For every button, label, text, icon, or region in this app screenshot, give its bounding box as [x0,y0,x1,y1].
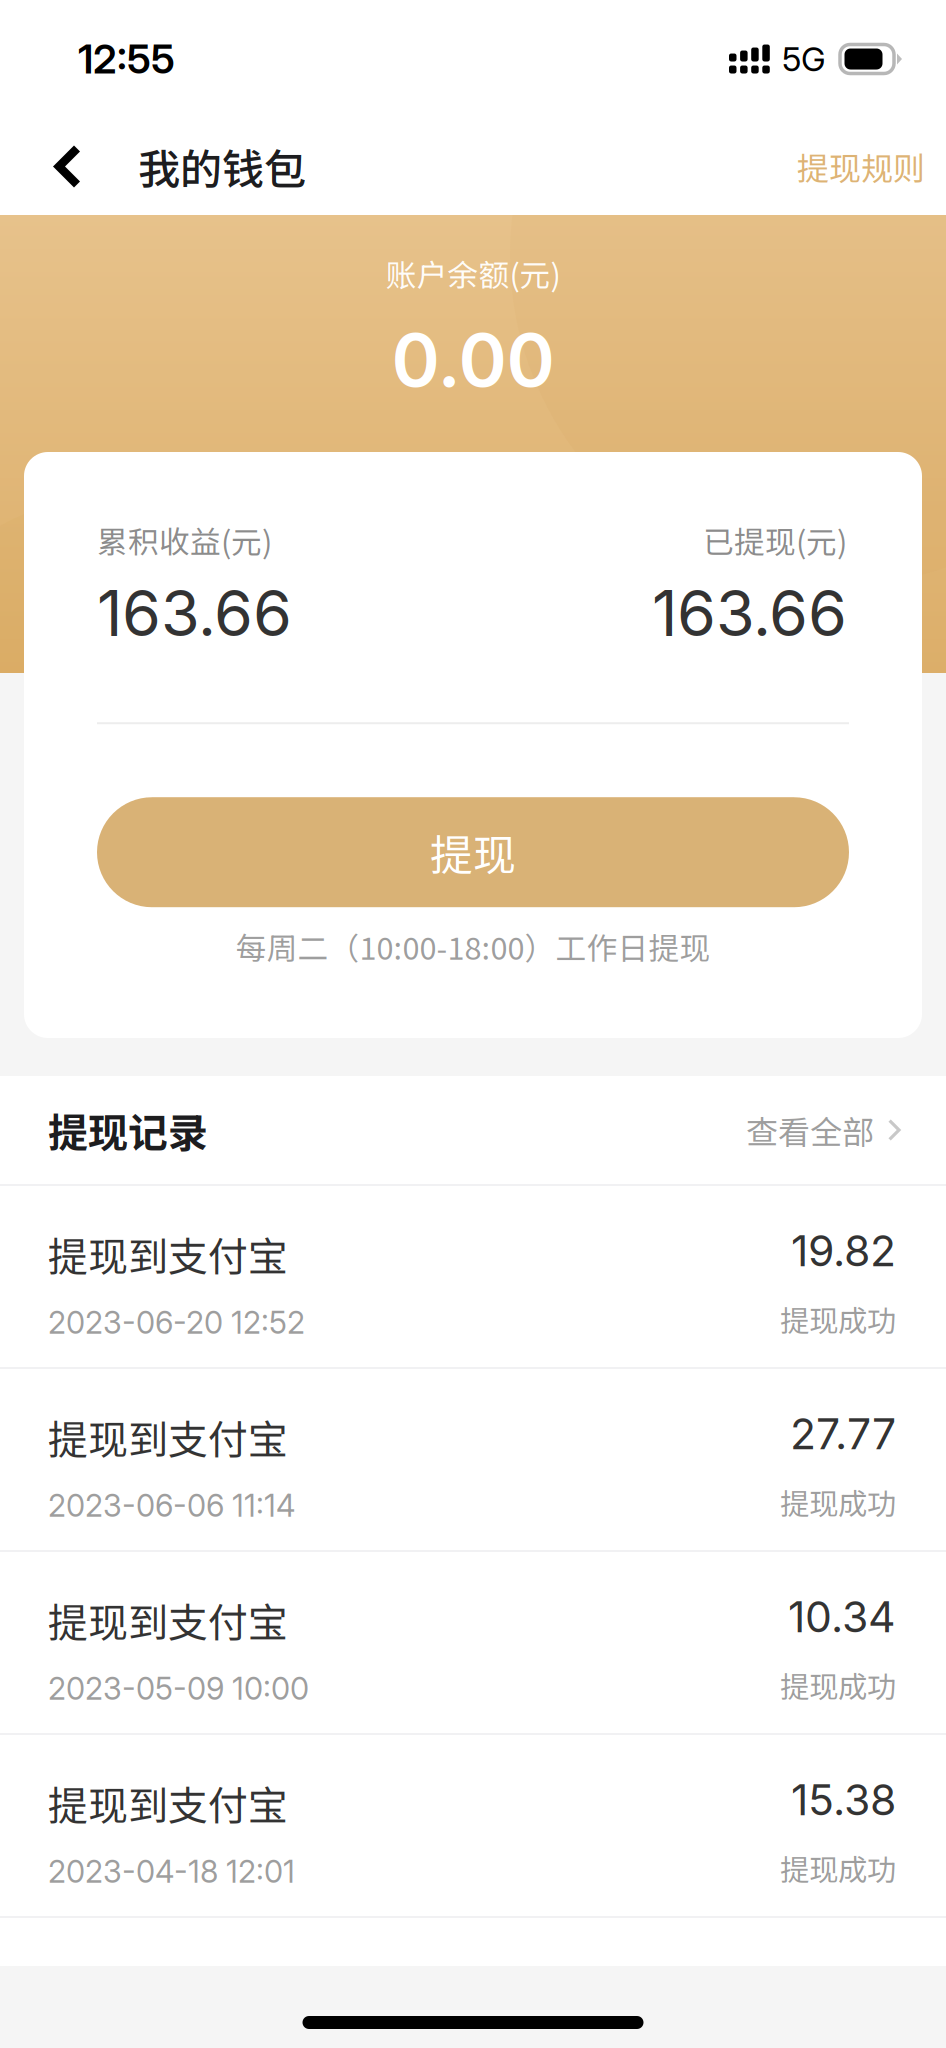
staticText: 0.00 [391,315,554,404]
staticText: 提现到支付宝 [48,1408,288,1466]
button[interactable]: 提现到支付宝 [0,1369,946,1552]
staticText: 提现到支付宝 [48,1225,288,1283]
button[interactable]: 提现规则 [797,121,946,212]
button[interactable]: 提现到支付宝 [0,1735,946,1918]
button[interactable]: 提现到支付宝 [0,1186,946,1369]
staticText: 提现记录 [48,1101,208,1159]
staticText: 提现到支付宝 [48,1774,288,1832]
staticText: 2023-04-18 12:01 [48,1853,295,1890]
staticText: 提现规则 [797,143,925,190]
staticText: 15.38 [791,1774,896,1826]
button[interactable]: 提现 [97,797,849,907]
staticText: 查看全部 [746,1107,874,1153]
staticText: 10.34 [788,1591,896,1643]
staticText: 5G [782,39,826,79]
staticText: 27.77 [790,1408,896,1460]
staticText: 账户余额(元) [385,251,560,295]
staticText: 12:55 [78,35,175,83]
staticText: 提现成功 [780,1298,896,1340]
staticText: 2023-06-06 11:14 [48,1487,295,1524]
staticText: 我的钱包 [138,136,306,197]
staticText: 2023-06-20 12:52 [48,1304,305,1341]
staticText: 每周二（10:00-18:00）工作日提现 [235,924,710,969]
staticText: 提现成功 [780,1481,896,1523]
button[interactable]: 提现到支付宝 [0,1552,946,1735]
staticText: 19.82 [791,1225,896,1277]
staticText: 已提现(元) [703,518,847,562]
button[interactable]: 查看全部 [746,1107,901,1153]
staticText: 163.66 [97,575,292,651]
staticText: 累积收益(元) [97,518,272,562]
staticText: 2023-05-09 10:00 [48,1670,309,1707]
staticText: 提现 [430,821,516,883]
staticText: 提现成功 [780,1847,896,1889]
staticText: 163.66 [652,575,847,651]
staticText: 提现到支付宝 [48,1591,288,1649]
staticText: 提现成功 [780,1664,896,1706]
button[interactable]: 返回 [0,124,138,208]
